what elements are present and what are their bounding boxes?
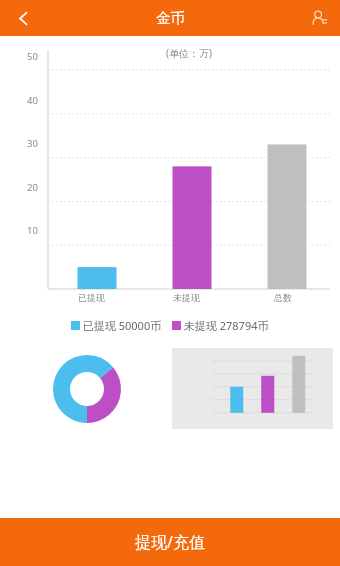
staticText: 未提现 278794币	[181, 318, 269, 333]
staticText: (单位：万)	[166, 46, 212, 60]
staticText: 30	[27, 137, 38, 150]
staticText: 50	[27, 50, 38, 63]
staticText: 10	[27, 224, 38, 237]
staticText: 20	[27, 181, 38, 194]
button[interactable]: Pie chart view	[7, 348, 172, 429]
staticText: 40	[27, 94, 38, 107]
button[interactable]: Account	[298, 0, 340, 36]
staticText: 金币	[156, 9, 185, 27]
button[interactable]: Back	[0, 0, 46, 36]
button[interactable]: Bar chart view	[172, 348, 333, 429]
staticText: 总数	[274, 292, 292, 303]
staticText: 未提现	[173, 292, 200, 303]
staticText: 提现/充值	[135, 531, 205, 553]
staticText: 已提现 50000币	[80, 318, 162, 333]
staticText: 已提现	[78, 292, 105, 303]
button[interactable]: 提现/充值	[0, 518, 340, 566]
